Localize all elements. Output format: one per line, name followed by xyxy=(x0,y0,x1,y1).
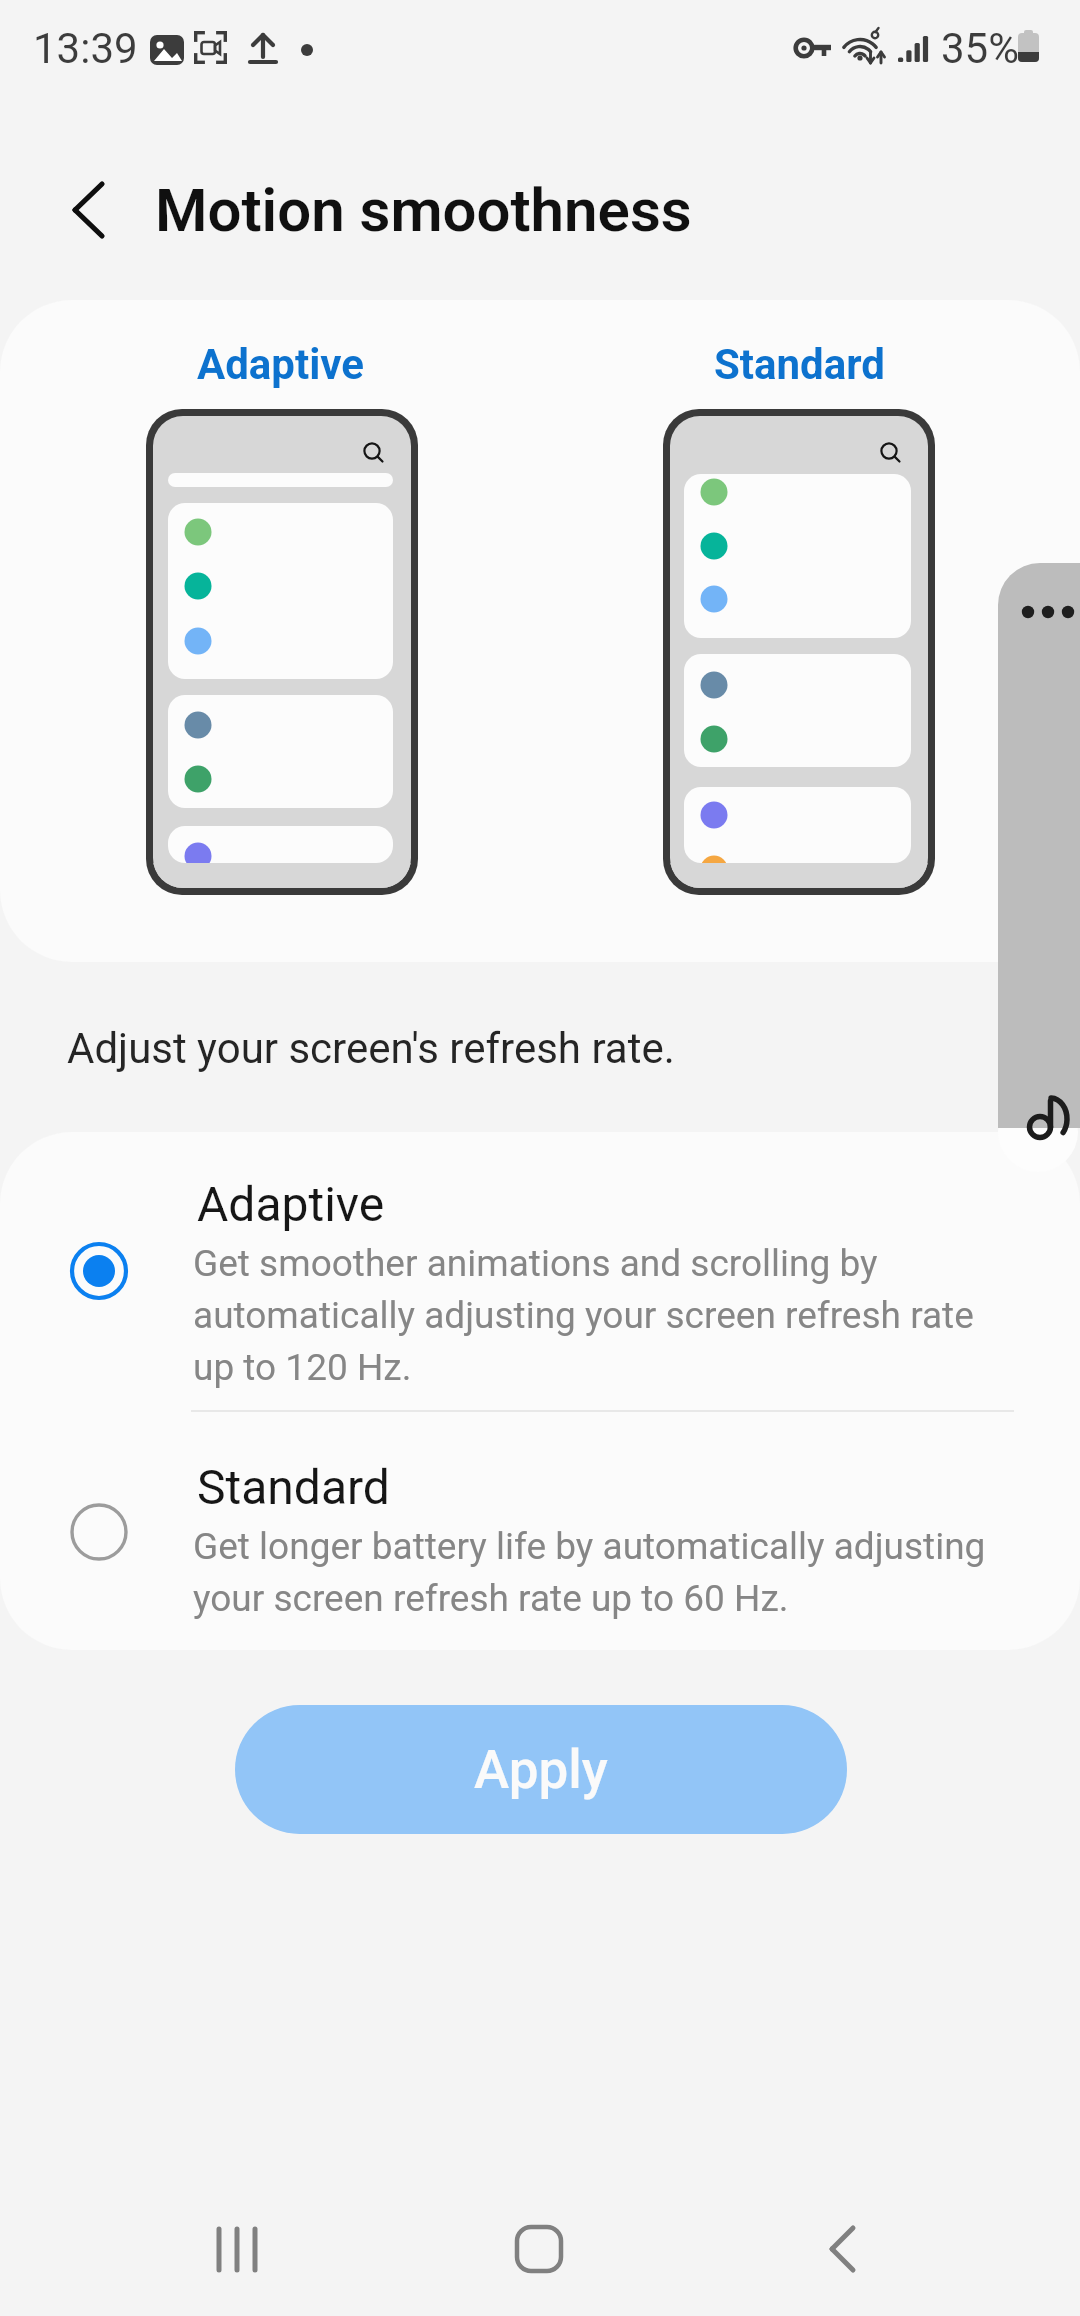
staticText: Adaptive xyxy=(197,1176,385,1232)
button[interactable]: Back xyxy=(784,2189,904,2309)
button[interactable]: Home xyxy=(479,2189,599,2309)
button[interactable]: Navigate up xyxy=(53,164,145,256)
staticText: Adaptive xyxy=(197,340,364,389)
staticText: Standard xyxy=(197,1459,390,1515)
staticText: Standard xyxy=(714,340,885,389)
staticText: 13:39 xyxy=(33,24,138,73)
button[interactable]: Edge panel handle xyxy=(990,555,1080,1165)
staticText: 35% xyxy=(941,24,1019,73)
staticText: Apply xyxy=(474,1739,608,1801)
button[interactable]: Recent apps xyxy=(177,2190,297,2310)
staticText: Adjust your screen's refresh rate. xyxy=(67,1024,675,1073)
button[interactable]: Apply xyxy=(235,1705,847,1834)
staticText: Get longer battery life by automatically… xyxy=(193,1525,993,1620)
staticText: Motion smoothness xyxy=(155,175,692,245)
button[interactable]: Adaptive xyxy=(0,1132,1080,1409)
staticText: Get smoother animations and scrolling by… xyxy=(193,1242,993,1389)
button[interactable]: Standard xyxy=(0,1409,1080,1650)
